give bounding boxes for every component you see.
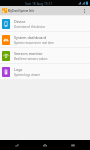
staticText: Overview of this device xyxy=(14,25,46,29)
staticText: Device xyxy=(14,19,26,24)
staticText: Logs xyxy=(14,67,23,72)
button[interactable]: Recent apps xyxy=(62,140,84,150)
staticText: System dashboard xyxy=(14,35,47,40)
button[interactable]: More options xyxy=(80,6,89,15)
staticText: Sensors monitor xyxy=(14,51,43,56)
button[interactable]: Home xyxy=(34,140,56,150)
button[interactable]: System dashboard xyxy=(0,32,90,47)
button[interactable]: Back xyxy=(6,140,28,150)
button[interactable]: Device xyxy=(0,16,90,31)
staticText: System resources in real time xyxy=(14,41,54,45)
staticText: Real time sensors values xyxy=(14,57,48,61)
button[interactable]: Sensors monitor xyxy=(0,48,90,63)
button[interactable]: Logs xyxy=(0,64,90,79)
staticText: MyDroid System Info xyxy=(8,9,34,13)
staticText: System logs viewer xyxy=(14,73,40,77)
staticText: Sun 18 Aug 15:11 xyxy=(25,1,53,6)
